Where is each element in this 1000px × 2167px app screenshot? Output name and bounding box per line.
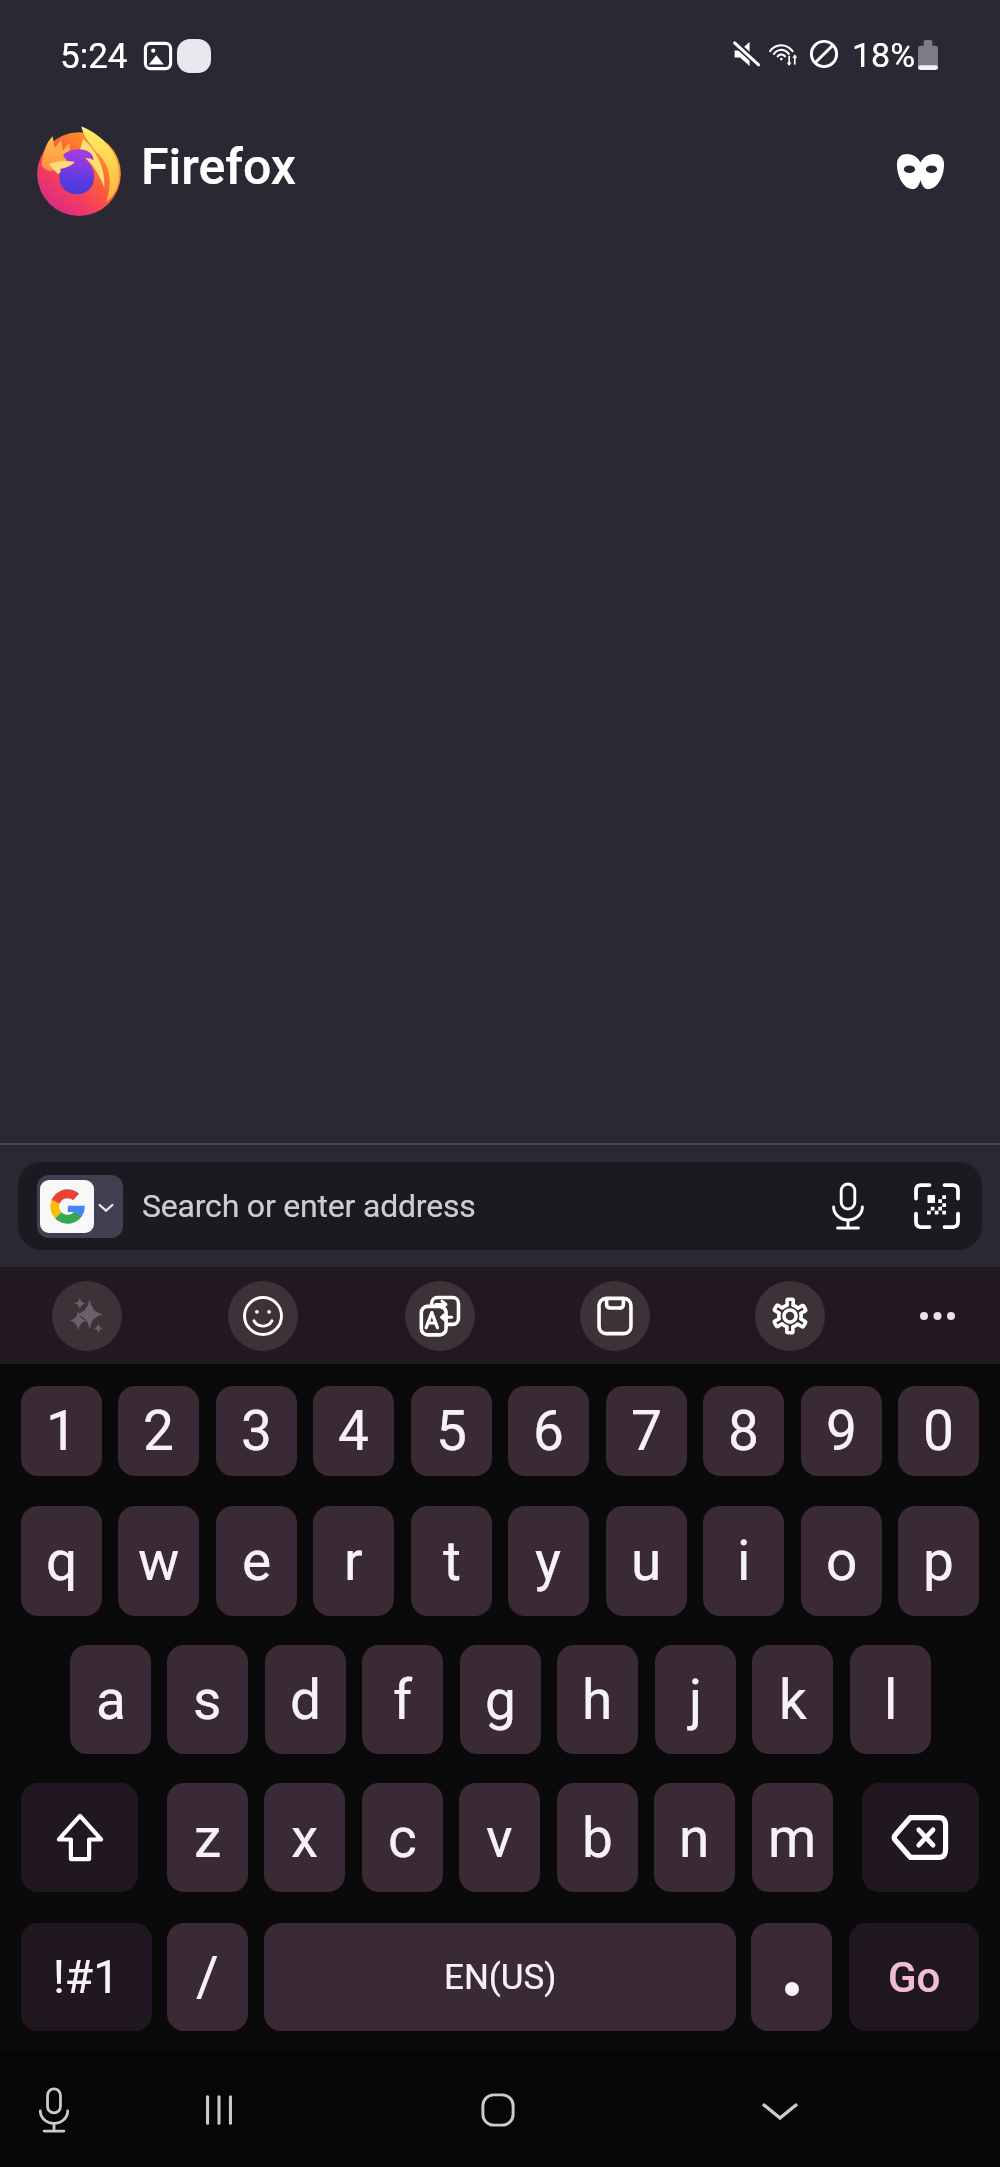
button[interactable]: l [850, 1645, 931, 1754]
staticText: f [393, 1668, 413, 1732]
button[interactable]: j [655, 1645, 736, 1754]
button[interactable]: m [752, 1783, 833, 1892]
staticText: 8 [728, 1399, 759, 1463]
button[interactable]: !#1 [21, 1923, 152, 2031]
staticText: / [196, 1945, 219, 2009]
button[interactable]: Voice search [812, 1170, 884, 1242]
button[interactable]: s [167, 1645, 248, 1754]
button[interactable]: Hide keyboard [745, 2075, 815, 2145]
button[interactable]: Private browsing [876, 126, 964, 214]
button[interactable]: Recents [184, 2075, 254, 2145]
staticText: 1 [46, 1399, 77, 1463]
staticText: s [193, 1668, 222, 1732]
staticText: 0 [923, 1399, 954, 1463]
staticText: a [96, 1668, 126, 1732]
button[interactable]: a [70, 1645, 151, 1754]
staticText: r [344, 1529, 363, 1593]
staticText: l [884, 1668, 898, 1732]
button[interactable]: c [362, 1783, 443, 1892]
staticText: g [485, 1668, 516, 1732]
staticText: 18% [852, 35, 916, 75]
button[interactable]: 0 [898, 1386, 979, 1476]
button[interactable]: 1 [21, 1386, 102, 1476]
staticText: y [535, 1529, 562, 1593]
staticText: c [388, 1806, 417, 1870]
button[interactable]: v [459, 1783, 540, 1892]
staticText: o [826, 1529, 858, 1593]
button[interactable]: Scan QR code [901, 1170, 973, 1242]
button[interactable]: Shift [21, 1783, 138, 1892]
button[interactable]: Go [849, 1923, 979, 2031]
staticText: 5 [436, 1399, 467, 1463]
button[interactable]: 9 [801, 1386, 882, 1476]
button[interactable]: 5 [411, 1386, 492, 1476]
staticText: w [138, 1529, 180, 1593]
staticText: EN(US) [444, 1957, 557, 1998]
button[interactable]: h [557, 1645, 638, 1754]
staticText: p [923, 1529, 954, 1593]
button[interactable]: / [167, 1923, 248, 2031]
button[interactable]: k [752, 1645, 833, 1754]
button[interactable]: 6 [508, 1386, 589, 1476]
button[interactable]: b [557, 1783, 638, 1892]
button[interactable]: 3 [216, 1386, 297, 1476]
staticText: 9 [826, 1399, 857, 1463]
staticText: !#1 [53, 1950, 120, 2004]
button[interactable]: w [118, 1506, 199, 1616]
button[interactable]: f [362, 1645, 443, 1754]
staticText: d [290, 1668, 322, 1732]
staticText: Firefox [141, 138, 296, 197]
staticText: 2 [143, 1399, 174, 1463]
staticText: 3 [241, 1399, 272, 1463]
staticText: k [779, 1668, 807, 1732]
button[interactable]: Period [751, 1923, 832, 2031]
staticText: Search or enter address [142, 1187, 476, 1225]
button[interactable]: AI suggestions [52, 1281, 122, 1351]
button[interactable]: Voice input [19, 2075, 89, 2145]
button[interactable]: t [411, 1506, 492, 1616]
button[interactable]: u [606, 1506, 687, 1616]
staticText: q [46, 1529, 78, 1593]
button[interactable]: 8 [703, 1386, 784, 1476]
staticText: i [737, 1529, 751, 1593]
button[interactable]: n [654, 1783, 735, 1892]
staticText: e [242, 1529, 272, 1593]
button[interactable]: Settings [755, 1281, 825, 1351]
button[interactable]: 4 [313, 1386, 394, 1476]
button[interactable]: z [167, 1783, 248, 1892]
button[interactable]: p [898, 1506, 979, 1616]
button[interactable]: Search engine [37, 1175, 123, 1238]
button[interactable]: 7 [606, 1386, 687, 1476]
button[interactable]: e [216, 1506, 297, 1616]
staticText: 7 [631, 1399, 662, 1463]
button[interactable]: x [264, 1783, 345, 1892]
button[interactable]: i [703, 1506, 784, 1616]
button[interactable]: More options [902, 1281, 972, 1351]
staticText: x [291, 1806, 319, 1870]
button[interactable]: Backspace [862, 1783, 979, 1892]
staticText: z [194, 1806, 222, 1870]
button[interactable]: Emoji [228, 1281, 298, 1351]
staticText: 4 [338, 1399, 369, 1463]
button[interactable]: Search engine [18, 1162, 982, 1250]
button[interactable]: q [21, 1506, 102, 1616]
staticText: n [679, 1806, 710, 1870]
staticText: u [631, 1529, 662, 1593]
staticText: m [768, 1806, 817, 1870]
button[interactable]: g [460, 1645, 541, 1754]
button[interactable]: Translate [405, 1281, 475, 1351]
staticText: v [486, 1806, 513, 1870]
staticText: b [582, 1806, 613, 1870]
staticText: t [443, 1529, 461, 1593]
button[interactable]: Home [463, 2075, 533, 2145]
button[interactable]: Clipboard [580, 1281, 650, 1351]
button[interactable]: 2 [118, 1386, 199, 1476]
staticText: 5:24 [60, 36, 128, 77]
button[interactable]: r [313, 1506, 394, 1616]
staticText: h [582, 1668, 613, 1732]
button[interactable]: y [508, 1506, 589, 1616]
button[interactable]: Space [264, 1923, 736, 2031]
staticText: Go [888, 1953, 941, 2002]
button[interactable]: d [265, 1645, 346, 1754]
button[interactable]: o [801, 1506, 882, 1616]
